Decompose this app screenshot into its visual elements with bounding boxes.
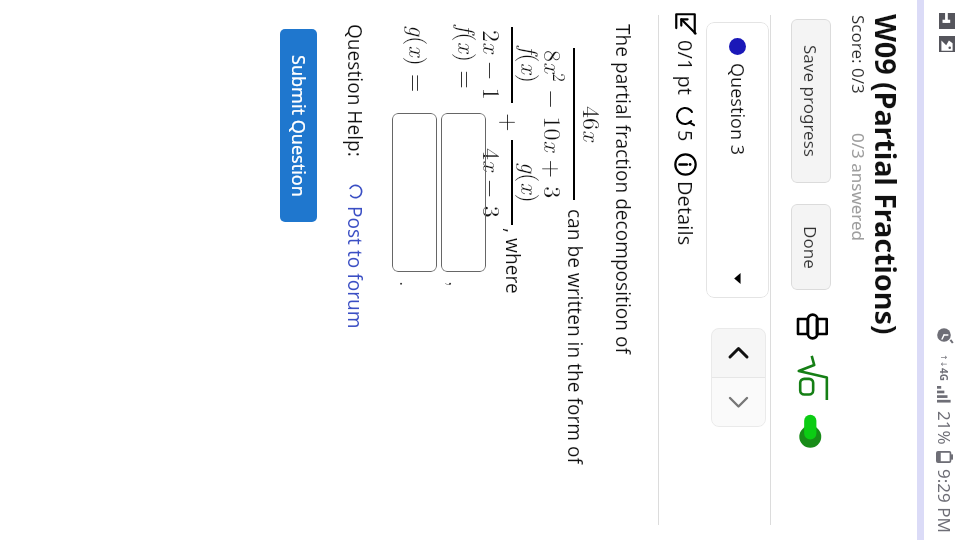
staticText: can be written in the form of (562, 209, 588, 465)
staticText: Question 3 (725, 63, 750, 156)
staticText: 0/3 answered (847, 133, 870, 242)
staticText: g(x) (514, 162, 548, 203)
button[interactable]: Done (791, 204, 831, 290)
staticText: Save progress (799, 45, 822, 157)
staticText: Details (672, 181, 699, 246)
button[interactable]: Textbook (792, 306, 834, 346)
staticText: 0/1 pt (672, 40, 699, 96)
staticText: The partial fraction decomposition of (610, 24, 636, 355)
staticText: 2x − 1 (476, 30, 510, 100)
button[interactable]: Submit Question (280, 29, 317, 222)
button[interactable] (392, 113, 437, 272)
staticText: . (395, 281, 423, 287)
staticText: 4G (937, 368, 951, 381)
button[interactable]: Question 3 (706, 22, 769, 298)
staticText: 9:29 PM (933, 469, 956, 533)
staticText: ↑↓ (939, 354, 948, 368)
staticText: g(x) = (402, 25, 436, 93)
staticText: , (444, 281, 472, 287)
staticText: 46x (576, 106, 610, 142)
staticText: , where (500, 228, 526, 294)
button[interactable] (441, 113, 486, 272)
staticText: 4x − 3 (476, 148, 510, 218)
staticText: Done (799, 226, 822, 269)
staticText: f(x) = (451, 25, 485, 89)
staticText: 5 (672, 130, 699, 142)
staticText: Question Help: (342, 24, 368, 157)
button[interactable]: Save progress (791, 19, 831, 183)
button[interactable]: Previous question (711, 328, 766, 377)
staticText: Score: 0/3 (847, 15, 870, 94)
staticText: + (494, 113, 528, 132)
staticText: Submit Question (286, 55, 311, 197)
staticText: Post to forum (342, 206, 368, 329)
button[interactable]: Next question (711, 378, 766, 427)
button[interactable]: Post to forum (342, 184, 368, 329)
button[interactable]: Calculator (793, 354, 829, 446)
staticText: 8x2 − 10x + 3 (537, 50, 572, 199)
staticText: W09 (Partial Fractions) (867, 14, 906, 335)
staticText: f(x) (514, 46, 548, 84)
staticText: 21% (933, 411, 956, 445)
